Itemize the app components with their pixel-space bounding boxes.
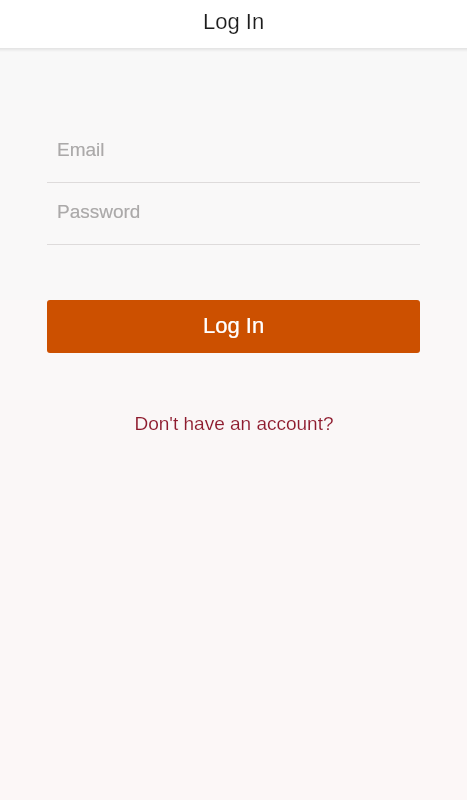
staticText: Password (57, 201, 141, 222)
button[interactable]: Email (47, 136, 420, 183)
button[interactable]: Password (47, 198, 420, 245)
staticText: Log In (203, 313, 265, 338)
staticText: Log In (203, 9, 265, 34)
staticText: Email (57, 139, 105, 160)
staticText: Don't have an account? (134, 413, 334, 434)
button[interactable]: Log In (47, 300, 420, 353)
button[interactable]: Don't have an account? (122, 405, 346, 442)
